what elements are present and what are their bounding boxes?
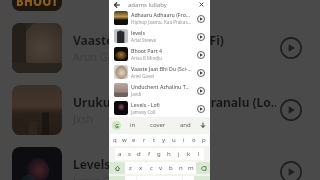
staticText: h bbox=[167, 150, 171, 158]
button[interactable]: Play bbox=[194, 48, 207, 61]
button[interactable]: Google assistant bbox=[112, 121, 121, 130]
staticText: o bbox=[192, 136, 196, 144]
button[interactable]: levels bbox=[109, 27, 210, 45]
button[interactable]: v bbox=[156, 162, 166, 174]
button[interactable]: Play bbox=[276, 33, 306, 63]
staticText: f bbox=[148, 150, 151, 158]
button[interactable]: h bbox=[164, 148, 174, 160]
button[interactable]: a bbox=[115, 148, 124, 160]
staticText: a bbox=[118, 150, 122, 158]
button[interactable]: Levels - Lofi bbox=[0, 147, 320, 180]
button[interactable]: x bbox=[136, 162, 146, 174]
button[interactable]: w bbox=[119, 134, 129, 146]
button[interactable]: g bbox=[154, 148, 164, 160]
staticText: Jxsh bbox=[73, 112, 93, 126]
button[interactable]: shift bbox=[109, 162, 125, 174]
button[interactable]: p bbox=[199, 134, 209, 146]
button[interactable]: j bbox=[174, 148, 184, 160]
button[interactable]: y bbox=[159, 134, 169, 146]
staticText: G bbox=[115, 122, 119, 129]
button[interactable]: o bbox=[189, 134, 199, 146]
staticText: Arisa R Mindju bbox=[131, 55, 163, 61]
other: Clear search bbox=[198, 1, 205, 8]
staticText: m bbox=[188, 164, 194, 172]
button[interactable]: r bbox=[139, 134, 149, 146]
button[interactable]: q bbox=[110, 134, 119, 146]
button[interactable]: z bbox=[125, 162, 136, 174]
staticText: Unduchent Azhalinu Theratu (Lo… bbox=[131, 83, 192, 90]
staticText: Arial Steeve bbox=[131, 37, 157, 43]
button[interactable]: Play bbox=[194, 84, 207, 97]
staticText: levels bbox=[131, 29, 145, 36]
button[interactable]: Play bbox=[194, 12, 207, 25]
staticText: w bbox=[122, 136, 127, 144]
staticText: in bbox=[130, 121, 136, 129]
button[interactable]: Play bbox=[276, 157, 306, 180]
button[interactable]: m bbox=[186, 162, 196, 174]
staticText: r bbox=[143, 136, 146, 144]
button[interactable]: Play bbox=[276, 95, 306, 125]
button[interactable]: c bbox=[146, 162, 156, 174]
staticText: t bbox=[153, 136, 156, 144]
staticText: d bbox=[137, 150, 141, 158]
button[interactable]: Unduchent Azhalinu Theratu (Lo… bbox=[109, 81, 210, 99]
button[interactable]: Play bbox=[194, 30, 207, 43]
button[interactable]: Levels - Lofi bbox=[109, 99, 210, 117]
staticText: adams lullaby bbox=[128, 1, 167, 9]
staticText: k bbox=[187, 150, 191, 158]
staticText: j bbox=[178, 150, 180, 158]
staticText: l bbox=[198, 150, 200, 158]
staticText: s bbox=[128, 150, 131, 158]
button[interactable]: l bbox=[194, 148, 204, 160]
button[interactable]: Vaaste Jaat Bhi Du (Sci-Fi) bbox=[109, 63, 210, 81]
staticText: v bbox=[159, 164, 163, 172]
button[interactable]: BHOOT bbox=[0, 0, 320, 11]
button[interactable]: k bbox=[184, 148, 194, 160]
staticText: p bbox=[202, 136, 206, 144]
button[interactable]: backspace bbox=[196, 162, 210, 174]
button[interactable]: n bbox=[176, 162, 186, 174]
button[interactable]: and bbox=[179, 121, 192, 129]
button[interactable]: Adhaaru Adhaaru (From "Kamm… bbox=[109, 9, 210, 27]
button[interactable]: e bbox=[129, 134, 139, 146]
staticText: z bbox=[129, 164, 132, 172]
staticText: Vaaste Jaat Bhi Du (Sci-Fi) bbox=[131, 65, 192, 72]
button[interactable]: in bbox=[129, 121, 137, 129]
staticText: e bbox=[132, 136, 136, 144]
staticText: Javdi bbox=[131, 91, 142, 97]
button[interactable]: f bbox=[144, 148, 154, 160]
staticText: Jxswa Coll bbox=[73, 174, 122, 180]
button[interactable]: s bbox=[124, 148, 134, 160]
staticText: Arun Gavel bbox=[73, 50, 128, 64]
staticText: Hiphop Jaamu, Kaa Prakash,Sa… bbox=[131, 19, 192, 25]
button[interactable]: Play bbox=[194, 102, 207, 115]
button[interactable]: i bbox=[179, 134, 189, 146]
button[interactable]: d bbox=[134, 148, 144, 160]
button[interactable]: cover bbox=[149, 121, 167, 129]
staticText: Bhoot Part 4 bbox=[131, 47, 162, 54]
other: More suggestions bbox=[199, 121, 207, 129]
staticText: Arisa R Mindju bbox=[73, 0, 145, 2]
staticText: Urukuthe Azhalinu Theranalu (Lo… bbox=[73, 94, 276, 110]
button[interactable]: Vaaste Jaat Bhi Du (Sci-Fi) bbox=[0, 23, 320, 73]
button[interactable]: Bhoot Part 4 bbox=[109, 45, 210, 63]
button[interactable]: Play bbox=[194, 66, 207, 79]
button[interactable]: u bbox=[169, 134, 179, 146]
staticText: i bbox=[183, 136, 185, 144]
staticText: g bbox=[157, 150, 161, 158]
button[interactable]: Back bbox=[109, 0, 210, 9]
staticText: b bbox=[169, 164, 173, 172]
button[interactable]: b bbox=[166, 162, 176, 174]
other: Back bbox=[113, 1, 121, 9]
button[interactable]: t bbox=[149, 134, 159, 146]
staticText: n bbox=[179, 164, 183, 172]
button[interactable]: Urukuthe Azhalinu Theranalu (Lo… bbox=[0, 85, 320, 135]
